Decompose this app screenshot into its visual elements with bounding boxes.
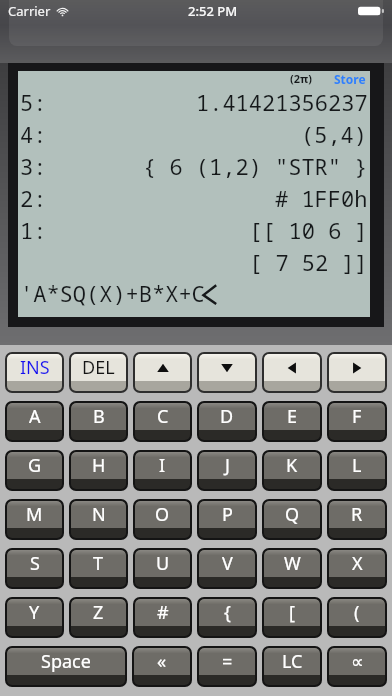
staticText: 1: — [20, 215, 47, 245]
button[interactable]: W — [264, 550, 320, 587]
button[interactable]: { — [199, 599, 255, 636]
button[interactable]: F — [329, 403, 385, 440]
staticText: # 1FF0h — [275, 183, 368, 213]
staticText: T — [93, 551, 104, 576]
staticText: E — [287, 404, 298, 429]
staticText: [[ 10 6 ] — [249, 215, 368, 245]
button[interactable]: O — [135, 501, 190, 538]
button[interactable]: N — [71, 501, 126, 538]
staticText: (2π) — [290, 71, 312, 86]
button[interactable]: # — [135, 599, 190, 636]
staticText: 3: — [20, 151, 47, 181]
staticText: 1.41421356237 — [196, 87, 368, 117]
staticText: S — [30, 551, 40, 576]
staticText: Y — [29, 600, 40, 625]
button[interactable]: H — [71, 452, 126, 489]
button[interactable]: DEL — [71, 354, 126, 391]
button[interactable]: R — [329, 501, 385, 538]
button[interactable]: E — [264, 403, 320, 440]
button[interactable]: « — [134, 648, 190, 685]
button[interactable]: INS — [7, 354, 62, 391]
button[interactable]: Left — [264, 354, 320, 391]
button[interactable]: L — [329, 452, 385, 489]
staticText: ∝ — [351, 651, 364, 672]
button[interactable]: M — [7, 501, 62, 538]
staticText: 2: — [20, 183, 47, 213]
button[interactable]: ∝ — [329, 648, 385, 685]
button[interactable]: Right — [329, 354, 385, 391]
staticText: 'A*SQ(X)+B*X+C — [20, 278, 205, 308]
button[interactable]: Z — [71, 599, 126, 636]
staticText: Store — [334, 71, 366, 86]
staticText: X — [352, 551, 363, 576]
button[interactable]: A — [7, 403, 62, 440]
staticText: 2:52 PM — [188, 2, 238, 20]
staticText: = — [222, 649, 233, 674]
button[interactable]: X — [329, 550, 385, 587]
button[interactable]: D — [199, 403, 255, 440]
button[interactable]: Store — [334, 71, 366, 86]
button[interactable]: S — [7, 550, 62, 587]
button[interactable]: C — [135, 403, 190, 440]
staticText: DEL — [82, 355, 115, 380]
staticText: 4: — [20, 119, 47, 149]
staticText: I — [159, 453, 166, 478]
button[interactable]: [ — [264, 599, 320, 636]
button[interactable]: P — [199, 501, 255, 538]
button[interactable]: Q — [264, 501, 320, 538]
staticText: K — [286, 453, 298, 478]
staticText: D — [220, 404, 234, 429]
staticText: V — [222, 551, 233, 576]
staticText: N — [92, 502, 106, 527]
staticText: H — [92, 453, 106, 478]
staticText: INS — [20, 355, 50, 380]
button[interactable]: = — [199, 648, 255, 685]
staticText: LC — [282, 649, 303, 674]
button[interactable]: T — [71, 550, 126, 587]
staticText: Space — [41, 649, 91, 674]
button[interactable]: J — [199, 452, 255, 489]
staticText: G — [28, 453, 42, 478]
button[interactable]: LC — [264, 648, 320, 685]
staticText: # — [157, 600, 169, 625]
staticText: A — [29, 404, 41, 429]
staticText: Q — [285, 502, 300, 527]
button[interactable]: Up — [135, 354, 190, 391]
staticText: { — [224, 600, 231, 625]
staticText: Carrier — [8, 2, 51, 20]
staticText: R — [351, 502, 363, 527]
staticText: [ — [289, 600, 295, 625]
staticText: F — [352, 404, 362, 429]
staticText: Z — [93, 600, 104, 625]
staticText: (5,4) — [301, 119, 368, 149]
button[interactable]: I — [135, 452, 190, 489]
button[interactable]: K — [264, 452, 320, 489]
button[interactable]: B — [71, 403, 126, 440]
staticText: B — [93, 404, 105, 429]
button[interactable]: Space — [7, 648, 125, 685]
staticText: O — [155, 502, 170, 527]
staticText: L — [352, 453, 362, 478]
button[interactable]: Down — [199, 354, 255, 391]
staticText: [ 7 52 ]] — [249, 247, 368, 277]
button[interactable]: V — [199, 550, 255, 587]
staticText: J — [225, 453, 230, 478]
button[interactable]: Y — [7, 599, 62, 636]
staticText: P — [222, 502, 233, 527]
staticText: 5: — [20, 87, 47, 117]
staticText: { 6 (1,2) "STR" } — [143, 151, 368, 181]
button[interactable]: ( — [329, 599, 385, 636]
staticText: ( — [354, 600, 360, 625]
button[interactable]: G — [7, 452, 62, 489]
staticText: C — [157, 404, 169, 429]
staticText: « — [157, 649, 167, 674]
button[interactable]: U — [135, 550, 190, 587]
staticText: W — [284, 551, 301, 576]
staticText: U — [156, 551, 170, 576]
staticText: M — [26, 502, 43, 527]
